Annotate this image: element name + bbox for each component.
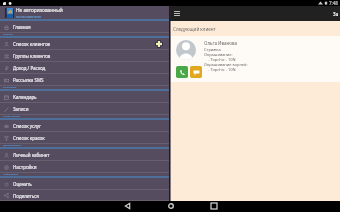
button[interactable]: Список услуг (0, 120, 169, 132)
button[interactable]: Группы клиентов (0, 50, 169, 62)
staticText: - Topchic - 10N (204, 67, 236, 72)
staticText: Оценить (13, 181, 32, 187)
staticText: Настройки (13, 164, 37, 170)
staticText: Список услуг (13, 123, 42, 129)
staticText: Список красок (13, 135, 45, 141)
button[interactable]: Список красок (0, 132, 169, 144)
staticText: Главная (13, 24, 31, 30)
button[interactable]: Recents (205, 200, 222, 211)
staticText: 7:48 (329, 0, 338, 6)
staticText: Не авторизованный (16, 7, 63, 14)
button[interactable]: Home (162, 200, 179, 211)
staticText: - Topchic - 10N (204, 57, 236, 62)
staticText: Информация (3, 173, 19, 176)
button[interactable]: Список клиентов (0, 38, 169, 50)
button[interactable]: Add client (154, 39, 164, 49)
staticText: Поделиться (13, 193, 39, 199)
staticText: Список клиентов (13, 41, 51, 47)
staticText: Стрижка (204, 47, 221, 52)
button[interactable]: Главная (0, 21, 169, 33)
staticText: Записи (13, 106, 29, 112)
button[interactable]: Send SMS (190, 66, 202, 78)
button[interactable]: Настройки (0, 161, 169, 173)
staticText: Расписание (3, 86, 17, 89)
button[interactable]: Записи (0, 103, 169, 115)
button[interactable]: Call (176, 66, 188, 78)
staticText: Календарь (13, 94, 37, 100)
button[interactable]: Оценить (0, 178, 169, 190)
button[interactable]: Личный кабинет (0, 149, 169, 161)
staticText: Окрашивание корней: (204, 62, 248, 67)
staticText: пользователь (16, 14, 42, 19)
staticText: Окрашивание: (204, 52, 233, 57)
staticText: Клиенты (3, 33, 14, 36)
button[interactable]: Календарь (0, 91, 169, 103)
staticText: Зап (333, 11, 340, 17)
button[interactable]: Back (119, 200, 136, 211)
staticText: Доход / Расход (13, 65, 46, 71)
button[interactable]: Ольга Иванова (171, 36, 340, 82)
staticText: Услуги, краски (3, 115, 20, 118)
staticText: Группы клиентов (13, 53, 51, 59)
staticText: Дополнительно (3, 144, 21, 147)
button[interactable]: Open navigation menu (169, 6, 184, 21)
staticText: Ольга Иванова (204, 40, 238, 46)
staticText: Следующий клиент (173, 26, 216, 32)
button[interactable]: Не авторизованный (0, 6, 169, 19)
staticText: Рассылка SMS (13, 77, 44, 83)
button[interactable]: Рассылка SMS (0, 74, 169, 86)
button[interactable]: Доход / Расход (0, 62, 169, 74)
staticText: Личный кабинет (13, 152, 50, 158)
button[interactable]: Поделиться (0, 190, 169, 201)
